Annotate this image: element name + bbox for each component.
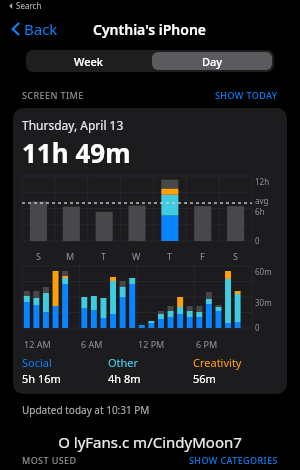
staticText: S <box>233 250 238 262</box>
staticText: T <box>101 250 107 262</box>
staticText: 11h 49m <box>22 135 131 170</box>
staticText: Day <box>202 54 223 69</box>
staticText: 12h <box>255 176 270 187</box>
staticText: avg <box>255 195 269 206</box>
staticText: SCREEN TIME <box>22 89 84 101</box>
staticText: 12 PM <box>138 338 165 350</box>
staticText: S <box>36 250 41 262</box>
button[interactable]: Social <box>22 355 108 386</box>
staticText: SHOW CATEGORIES <box>189 454 278 466</box>
staticText: F <box>200 250 205 262</box>
staticText: Social <box>22 355 52 370</box>
staticText: 0 <box>255 235 260 246</box>
staticText: 56m <box>193 371 216 386</box>
staticText: Search <box>16 0 42 11</box>
button[interactable]: Creativity <box>193 355 278 386</box>
button[interactable]: Other <box>108 355 193 386</box>
staticText: 6h <box>255 206 265 217</box>
button[interactable]: SHOW CATEGORIES <box>189 454 278 466</box>
staticText: 12 AM <box>24 338 51 350</box>
staticText: 6 PM <box>196 338 218 350</box>
button[interactable]: Week <box>26 50 150 72</box>
staticText: 60m <box>255 266 272 277</box>
staticText: Week <box>74 54 103 69</box>
staticText: Thursday, April 13 <box>22 117 124 133</box>
staticText: 0 <box>255 322 260 333</box>
staticText: M <box>66 250 75 262</box>
staticText: Back <box>24 19 58 39</box>
button[interactable]: Day <box>152 52 272 70</box>
staticText: SHOW TODAY <box>215 89 278 101</box>
staticText: Updated today at 10:31 PM <box>22 403 150 417</box>
staticText: 5h 16m <box>22 371 61 386</box>
button[interactable]: Back <box>6 15 62 43</box>
staticText: O lyFans.c m/CindyMoon7 <box>58 432 242 452</box>
staticText: 30m <box>255 297 272 308</box>
button[interactable]: Thursday, April 13 <box>13 108 287 394</box>
staticText: T <box>167 250 173 262</box>
staticText: Other <box>108 355 139 370</box>
staticText: Creativity <box>193 355 242 370</box>
button[interactable]: SHOW TODAY <box>215 89 278 101</box>
staticText: Cynthia's iPhone <box>93 20 207 39</box>
staticText: MOST USED <box>22 454 77 466</box>
staticText: 6 AM <box>81 338 103 350</box>
staticText: 4h 8m <box>108 371 141 386</box>
staticText: W <box>132 250 141 262</box>
